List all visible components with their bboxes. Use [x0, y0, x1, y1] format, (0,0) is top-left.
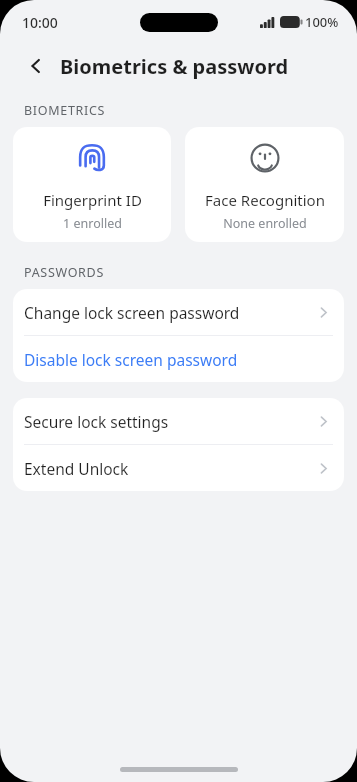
- staticText: Fingerprint ID: [43, 190, 142, 210]
- staticText: Face Recognition: [205, 190, 325, 210]
- button[interactable]: Fingerprint ID: [13, 127, 171, 242]
- button[interactable]: Face Recognition: [185, 127, 344, 242]
- staticText: Biometrics & password: [60, 53, 289, 80]
- staticText: PASSWORDS: [24, 264, 104, 281]
- staticText: Secure lock settings: [24, 411, 317, 432]
- staticText: 10:00: [22, 13, 58, 32]
- button[interactable]: Extend Unlock: [13, 445, 344, 491]
- button[interactable]: Secure lock settings: [13, 398, 344, 444]
- button[interactable]: Change lock screen password: [13, 289, 344, 335]
- staticText: None enrolled: [223, 215, 307, 232]
- staticText: Extend Unlock: [24, 458, 317, 479]
- staticText: 1 enrolled: [63, 215, 122, 232]
- staticText: Disable lock screen password: [24, 349, 330, 370]
- button[interactable]: Back: [20, 50, 52, 82]
- button[interactable]: Disable lock screen password: [13, 336, 344, 382]
- staticText: BIOMETRICS: [24, 102, 106, 119]
- staticText: Change lock screen password: [24, 302, 317, 323]
- staticText: 100%: [305, 13, 339, 31]
